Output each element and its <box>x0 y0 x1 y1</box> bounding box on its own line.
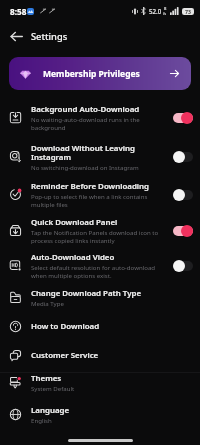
button[interactable]: Quick Download Panel <box>0 212 200 249</box>
button[interactable]: Download Without Leaving Instagram <box>0 138 200 175</box>
button[interactable]: Back <box>5 25 27 47</box>
staticText: Language <box>31 405 70 416</box>
button[interactable]: Themes <box>0 367 200 397</box>
button[interactable] <box>173 189 193 201</box>
staticText: System Default <box>31 384 75 392</box>
staticText: How to Download <box>31 321 100 332</box>
staticText: Select default resolution for auto-downl… <box>31 263 164 279</box>
button[interactable]: How to Download <box>0 312 200 341</box>
button[interactable]: Customer Service <box>0 341 200 369</box>
staticText: 73 <box>185 8 191 15</box>
staticText: Membership Privileges <box>43 68 140 80</box>
staticText: Change Download Path Type <box>31 288 142 299</box>
staticText: Download Without Leaving Instagram <box>31 143 164 163</box>
staticText: Settings <box>31 30 68 43</box>
staticText: Reminder Before Downloading <box>31 181 150 192</box>
staticText: Customer Service <box>31 350 99 361</box>
staticText: No switching-download on Instagram <box>31 163 139 171</box>
button[interactable] <box>173 260 193 272</box>
staticText: Media Type <box>31 299 64 307</box>
staticText: Auto-Download Video <box>31 252 115 263</box>
staticText: Themes <box>31 373 62 384</box>
staticText: B <box>164 6 167 11</box>
button[interactable]: Reminder Before Downloading <box>0 176 200 213</box>
staticText: Quick Download Panel <box>31 217 118 228</box>
staticText: Background Auto-Download <box>31 104 140 115</box>
staticText: No waiting-auto-download runs in the bac… <box>31 115 164 131</box>
button[interactable]: Background Auto-Download <box>0 96 200 139</box>
button[interactable]: Auto-Download Video <box>0 248 200 283</box>
staticText: 8:58 <box>10 6 27 17</box>
button[interactable]: Change Download Path Type <box>0 283 200 312</box>
staticText: Tap the Notification Panels download ico… <box>31 228 164 244</box>
staticText: /s <box>163 11 167 16</box>
button[interactable] <box>173 225 193 237</box>
staticText: 52.0 <box>149 7 162 15</box>
staticText: English <box>31 416 52 424</box>
button[interactable]: Language <box>0 399 200 429</box>
button[interactable]: Membership Privileges <box>9 57 191 90</box>
staticText: Pop-up to select file when a link contai… <box>31 192 164 208</box>
button[interactable] <box>173 151 193 163</box>
button[interactable] <box>173 112 193 124</box>
